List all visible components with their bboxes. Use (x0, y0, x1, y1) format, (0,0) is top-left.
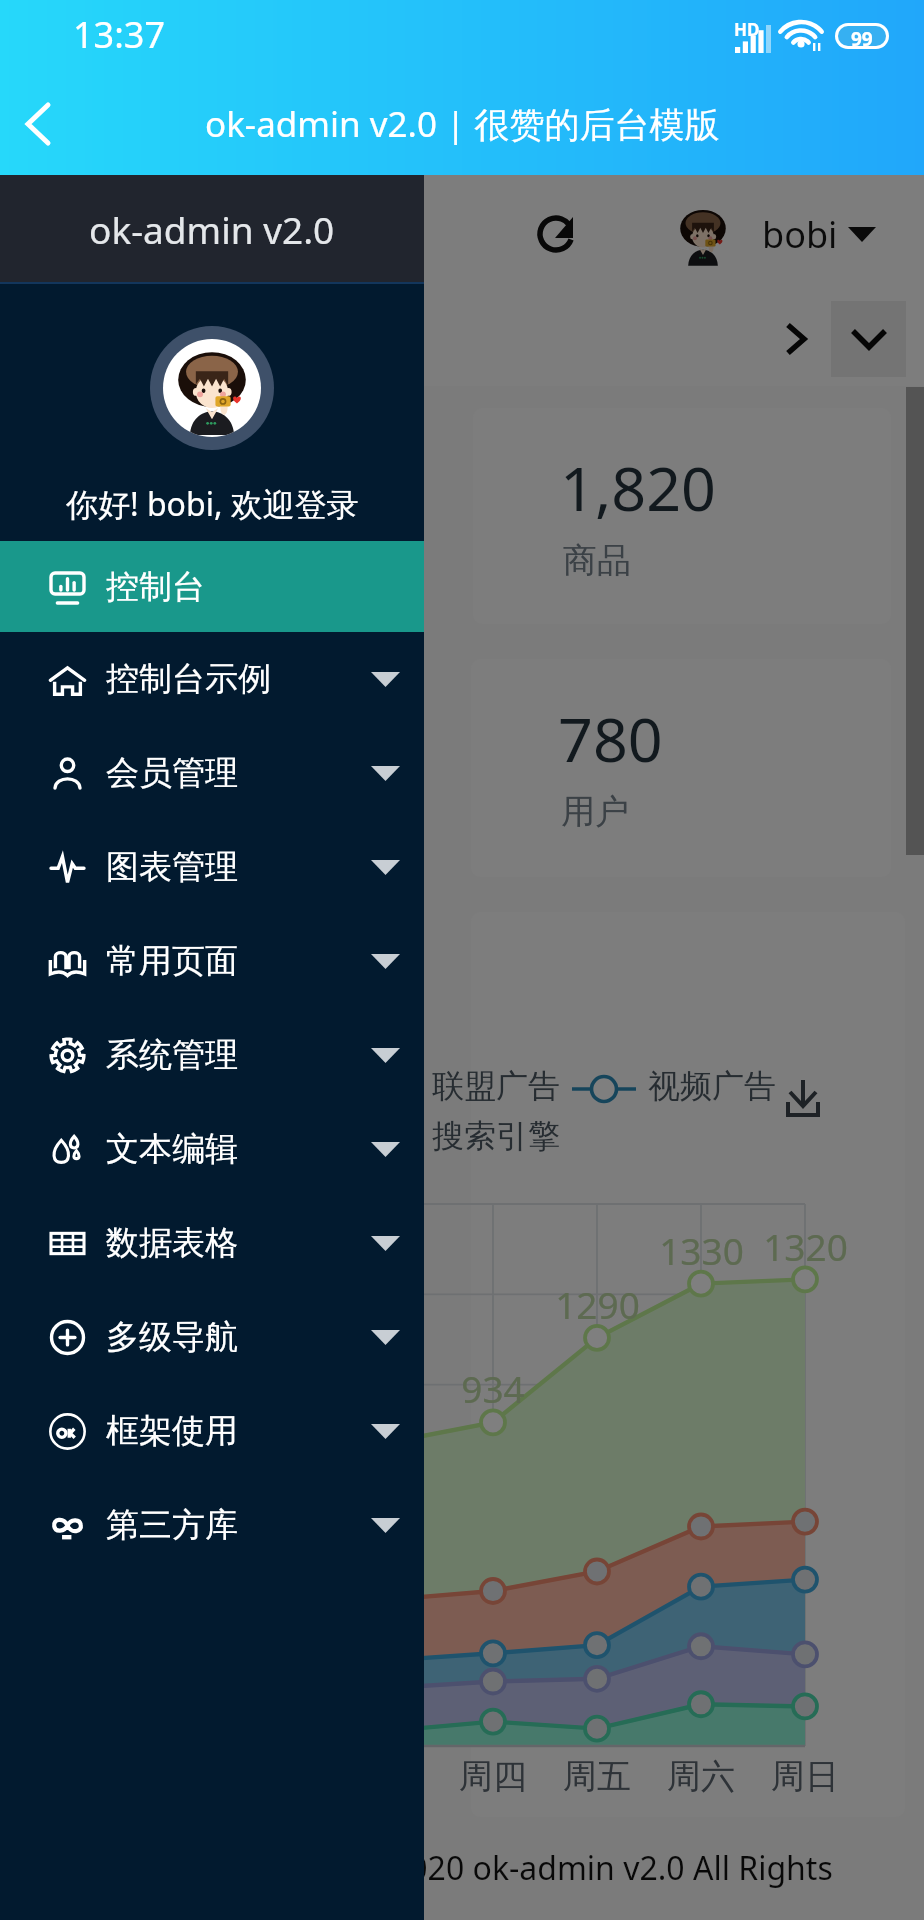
staticText: 商品 (563, 539, 631, 582)
button[interactable]: Download chart (779, 1074, 827, 1122)
button[interactable]: 文本编辑 (0, 1102, 424, 1196)
button[interactable]: Next tab (775, 318, 817, 360)
staticText: 视频广告 (648, 1066, 776, 1106)
staticText: 搜索引擎 (432, 1116, 560, 1156)
staticText: 控制台 (106, 566, 205, 608)
button[interactable]: 1,820 (473, 408, 891, 624)
staticText: 用户 (561, 790, 629, 833)
staticText: ok-admin v2.0 | 很赞的后台模版 (205, 100, 720, 148)
staticText: 联盟广告 (432, 1066, 560, 1106)
button[interactable]: Expand tabs (831, 301, 906, 377)
staticText: 周四 (459, 1755, 527, 1798)
staticText: 周日 (771, 1755, 839, 1798)
staticText: 13:37 (73, 10, 166, 59)
staticText: 周六 (667, 1755, 735, 1798)
button[interactable]: 数据表格 (0, 1196, 424, 1290)
button[interactable]: 780 (471, 659, 891, 877)
staticText: 你好! bobi, 欢迎登录 (66, 482, 359, 526)
staticText: 多级导航 (106, 1316, 238, 1358)
staticText: 控制台示例 (106, 658, 271, 700)
staticText: 1,820 (560, 446, 716, 529)
button[interactable]: 控制台 (0, 541, 424, 632)
button[interactable]: 常用页面 (0, 914, 424, 1008)
staticText: 第三方库 (106, 1504, 238, 1546)
staticText: 1290 (555, 1279, 640, 1323)
staticText: 文本编辑 (106, 1128, 238, 1170)
staticText: 1320 (763, 1221, 848, 1265)
staticText: ok-admin v2.0 (89, 204, 335, 254)
staticText: 数据表格 (106, 1222, 238, 1264)
staticText: 99 (851, 26, 873, 46)
staticText: 周五 (563, 1755, 631, 1798)
button[interactable]: 框架使用 (0, 1384, 424, 1478)
staticText: 系统管理 (106, 1034, 238, 1076)
staticText: 会员管理 (106, 752, 238, 794)
staticText: 框架使用 (106, 1410, 238, 1452)
staticText: 常用页面 (106, 940, 238, 982)
staticText: 2020 ok-admin v2.0 All Rights (391, 1846, 833, 1890)
button[interactable]: 系统管理 (0, 1008, 424, 1102)
button[interactable]: 会员管理 (0, 726, 424, 820)
staticText: 图表管理 (106, 846, 238, 888)
button[interactable]: Back (8, 94, 68, 154)
staticText: 934 (461, 1363, 525, 1407)
button[interactable]: 多级导航 (0, 1290, 424, 1384)
button[interactable]: 控制台示例 (0, 632, 424, 726)
button[interactable]: Refresh (530, 208, 582, 260)
staticText: 1330 (659, 1225, 744, 1269)
staticText: 780 (558, 697, 663, 780)
button[interactable]: 图表管理 (0, 820, 424, 914)
staticText: bobi (762, 210, 838, 259)
staticText: HD (734, 18, 760, 41)
button[interactable]: 第三方库 (0, 1478, 424, 1572)
